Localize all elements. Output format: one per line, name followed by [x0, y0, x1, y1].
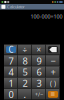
staticText: +/− — [35, 91, 43, 98]
button[interactable]: 8 — [18, 55, 32, 66]
staticText: 2 — [22, 77, 27, 89]
button[interactable]: 6 — [32, 66, 46, 78]
staticText: − — [50, 55, 55, 67]
button[interactable]: . — [18, 89, 32, 100]
button[interactable]: 3 — [32, 78, 46, 89]
staticText: Calculator — [7, 4, 25, 9]
button[interactable]: 1 — [4, 78, 18, 89]
staticText: 1 — [8, 77, 13, 89]
button[interactable]: 7 — [4, 55, 18, 66]
staticText: 8 — [22, 55, 27, 67]
button[interactable]: + — [46, 66, 60, 78]
staticText: ( ) — [50, 79, 56, 88]
staticText: 6 — [36, 66, 41, 78]
button[interactable]: = — [46, 89, 60, 100]
button[interactable]: ÷ — [18, 44, 32, 55]
staticText: . — [23, 88, 26, 100]
button[interactable]: 9 — [32, 55, 46, 66]
button[interactable]: Backspace — [46, 44, 60, 55]
button[interactable]: 4 — [4, 66, 18, 78]
staticText: C — [8, 44, 13, 55]
staticText: 5 — [22, 66, 27, 78]
button[interactable]: − — [46, 55, 60, 66]
button[interactable]: C — [4, 44, 18, 55]
button[interactable]: ( ) — [46, 78, 60, 89]
staticText: 0 — [8, 88, 13, 100]
button[interactable]: × — [32, 44, 46, 55]
staticText: × — [36, 44, 41, 55]
button[interactable]: 2 — [18, 78, 32, 89]
staticText: ÷ — [22, 44, 27, 55]
staticText: 100-000=100 — [30, 13, 62, 20]
staticText: 4 — [8, 66, 13, 78]
button[interactable]: 5 — [18, 66, 32, 78]
staticText: = — [50, 89, 55, 100]
button[interactable]: +/− — [32, 89, 46, 100]
staticText: 9 — [36, 55, 41, 67]
staticText: + — [50, 66, 55, 78]
button[interactable]: 0 — [4, 89, 18, 100]
staticText: 7 — [8, 55, 13, 67]
staticText: 3 — [36, 77, 41, 89]
